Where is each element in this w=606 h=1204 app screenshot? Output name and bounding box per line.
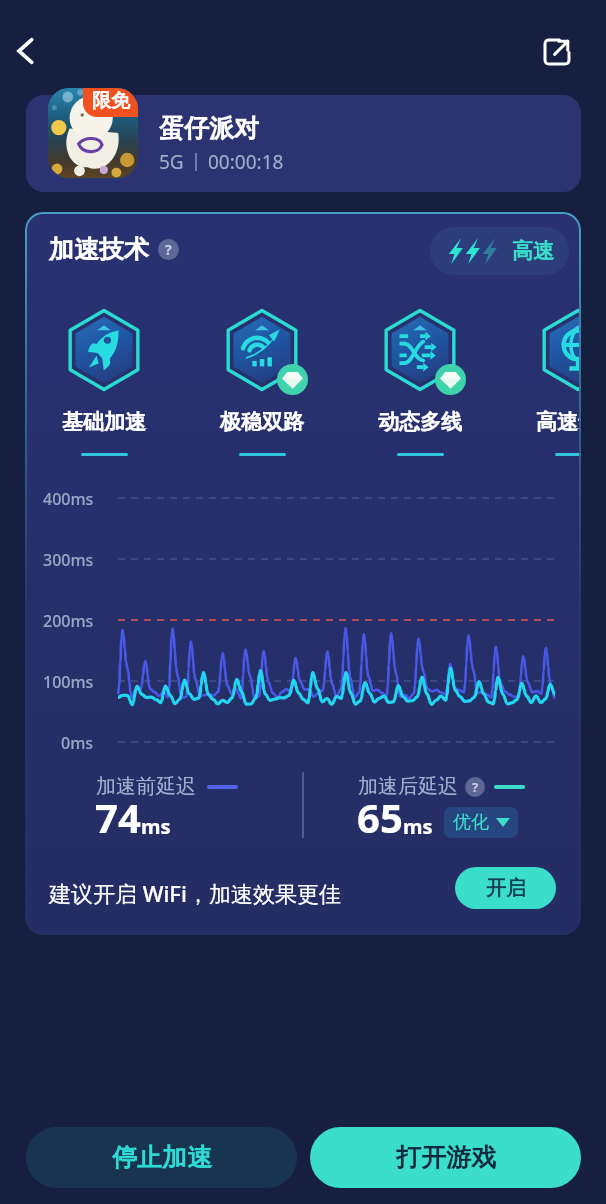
button[interactable]: Share <box>537 32 577 72</box>
button[interactable]: 蛋仔派对 <box>26 95 581 192</box>
staticText: 限免 <box>92 89 130 113</box>
staticText: 开启 <box>486 876 526 901</box>
button[interactable]: 开启 <box>455 867 556 909</box>
button[interactable]: Help <box>158 239 179 260</box>
staticText: 停止加速 <box>112 1142 212 1173</box>
staticText: 蛋仔派对 <box>159 113 259 144</box>
staticText: ? <box>165 240 172 259</box>
staticText: 200ms <box>43 610 94 632</box>
staticText: ms <box>403 813 433 840</box>
button[interactable]: 停止加速 <box>26 1127 297 1188</box>
button[interactable]: 高速专线 <box>523 296 581 466</box>
button[interactable]: 打开游戏 <box>310 1127 581 1188</box>
staticText: 基础加速 <box>62 409 146 435</box>
staticText: 极稳双路 <box>220 409 304 435</box>
staticText: 加速技术 <box>49 234 149 265</box>
staticText: ? <box>472 778 479 796</box>
button[interactable]: 动态多线 <box>365 296 475 466</box>
staticText: 300ms <box>43 549 94 571</box>
staticText: 优化 <box>453 811 489 834</box>
staticText: 建议开启 WiFi，加速效果更佳 <box>49 878 341 908</box>
staticText: 打开游戏 <box>396 1142 496 1173</box>
staticText: 5G <box>159 149 184 175</box>
staticText: 65 <box>357 790 403 844</box>
staticText: 0ms <box>61 732 94 754</box>
staticText: 00:00:18 <box>208 149 284 175</box>
staticText: 高速 <box>512 238 554 264</box>
button[interactable]: 基础加速 <box>49 296 159 466</box>
button[interactable]: Help <box>465 777 485 797</box>
staticText: 400ms <box>43 488 94 510</box>
button[interactable]: 极稳双路 <box>207 296 317 466</box>
staticText: 动态多线 <box>378 409 462 435</box>
staticText: 加速后延迟 <box>358 774 458 799</box>
button[interactable]: 高速 <box>430 227 569 275</box>
button[interactable]: 优化 <box>444 807 518 838</box>
staticText: 74 <box>95 790 141 844</box>
button[interactable]: Back <box>2 27 50 75</box>
staticText: 加速前延迟 <box>96 774 196 799</box>
staticText: 100ms <box>43 671 94 693</box>
staticText: ms <box>141 813 171 840</box>
staticText: 高速专线 <box>536 409 581 435</box>
